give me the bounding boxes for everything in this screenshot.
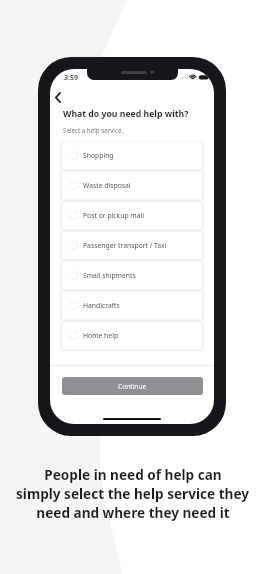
staticText: 3:59 [64,73,78,83]
staticText: Select a help service. [63,126,124,134]
button[interactable]: Small shipments [61,261,203,290]
button[interactable]: Shopping [61,141,203,170]
button[interactable]: Back [50,88,67,106]
button[interactable]: Passenger transport / Taxi [61,231,203,260]
button[interactable]: Post or pickup mail [61,201,203,230]
button[interactable]: Continue [62,377,203,395]
staticText: People in need of help can [44,465,222,484]
staticText: Waste disposal [83,181,131,190]
staticText: Post or pickup mail [83,211,145,220]
staticText: What do you need help with? [63,108,189,120]
button[interactable]: Home help [61,321,203,350]
staticText: Shopping [83,151,114,160]
button[interactable]: Waste disposal [61,171,203,200]
staticText: Small shipments [83,271,136,280]
staticText: Continue [118,382,147,391]
staticText: simply select the help service they [16,484,249,503]
staticText: Home help [83,331,119,340]
staticText: need and where they need it [36,503,230,522]
staticText: Handicrafts [83,301,120,310]
button[interactable]: Handicrafts [61,291,203,320]
staticText: Passenger transport / Taxi [83,241,167,250]
